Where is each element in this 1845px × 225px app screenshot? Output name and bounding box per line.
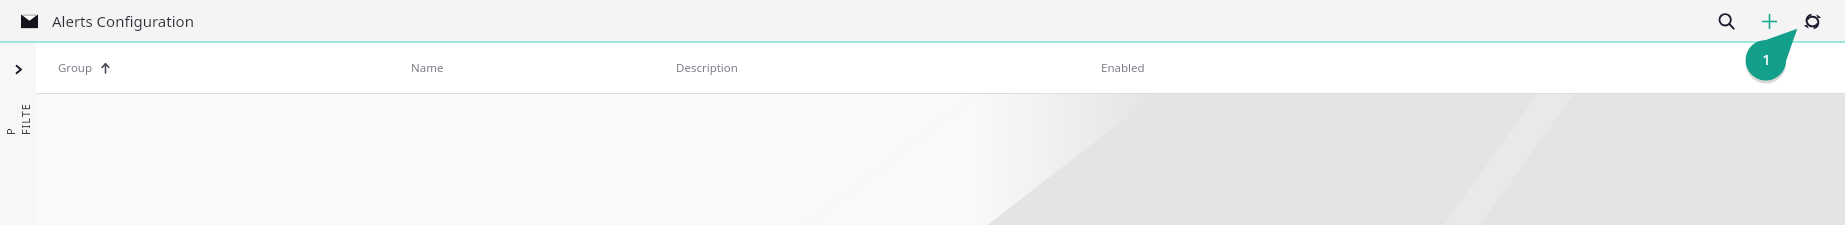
button[interactable]: Description [676, 43, 1101, 93]
staticText: Description [676, 60, 738, 76]
button[interactable]: Group filter [0, 43, 36, 225]
staticText: Enabled [1101, 60, 1145, 76]
button[interactable]: Notification count 1 [1744, 30, 1796, 82]
staticText: 1 [1762, 49, 1771, 69]
staticText: Name [411, 60, 444, 76]
button[interactable]: Group [36, 43, 411, 93]
staticText: Group [58, 60, 93, 76]
staticText: GROUP FILTER [0, 99, 48, 135]
button[interactable]: Add [1752, 4, 1786, 38]
button[interactable]: Refresh [1795, 4, 1829, 38]
button[interactable]: Search [1709, 4, 1743, 38]
button[interactable]: Name [411, 43, 676, 93]
staticText: Alerts Configuration [52, 11, 194, 31]
button[interactable]: Mail [14, 6, 44, 36]
button[interactable]: Enabled [1101, 43, 1845, 93]
